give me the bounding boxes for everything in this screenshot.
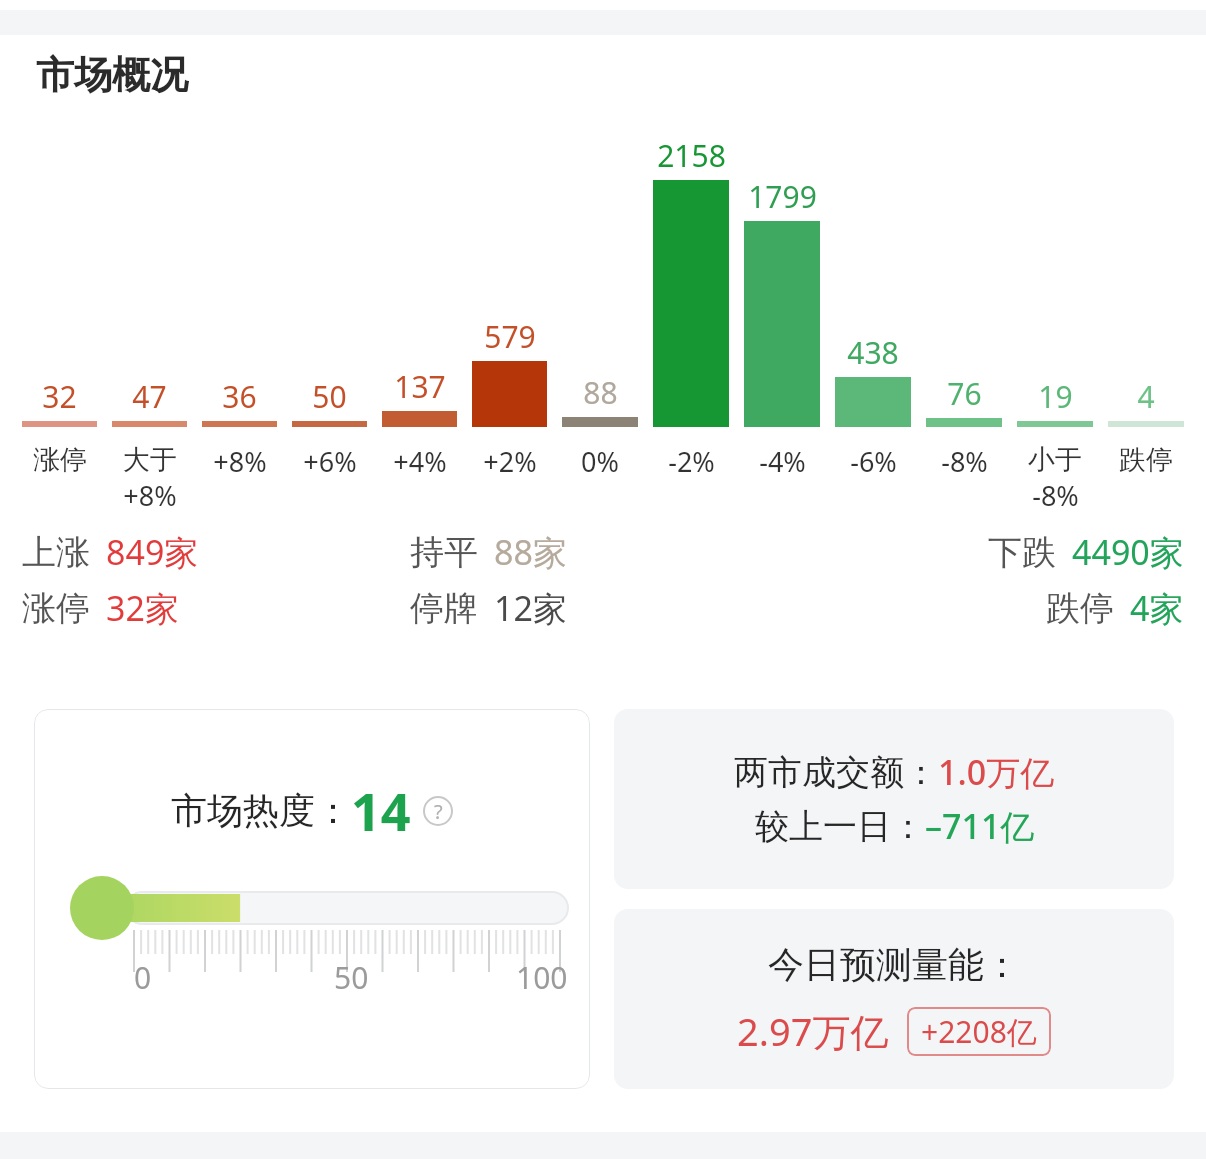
staticText: 市场概况: [36, 51, 188, 99]
staticText: 上涨: [22, 531, 90, 574]
staticText: 1799: [748, 176, 817, 217]
button[interactable]: 438: [835, 115, 911, 515]
staticText: 2.97万亿: [737, 1005, 889, 1057]
button[interactable]: 持平: [410, 529, 797, 575]
staticText: 市场热度：: [171, 788, 351, 833]
staticText: 较上一日：: [755, 805, 925, 848]
staticText: ?: [434, 798, 443, 825]
button[interactable]: 涨停: [22, 585, 410, 631]
button[interactable]: 下跌: [797, 529, 1184, 575]
staticText: 大于: [123, 443, 177, 477]
button[interactable]: 1799: [744, 115, 820, 515]
button[interactable]: 32: [22, 115, 97, 515]
button[interactable]: 跌停: [797, 585, 1184, 631]
staticText: 32: [42, 376, 77, 417]
staticText: -8%: [1032, 477, 1079, 514]
staticText: –711亿: [925, 803, 1035, 849]
staticText: 19: [1038, 376, 1073, 417]
staticText: 88: [583, 372, 618, 413]
staticText: +2%: [483, 443, 537, 480]
staticText: 100: [516, 957, 568, 998]
staticText: 47: [132, 376, 167, 417]
staticText: +8%: [213, 443, 267, 480]
staticText: 849家: [106, 529, 199, 575]
staticText: -8%: [941, 443, 988, 480]
staticText: 1.0万亿: [938, 749, 1055, 795]
button[interactable]: 上涨: [22, 529, 410, 575]
staticText: 跌停: [1046, 587, 1114, 630]
staticText: 跌停: [1119, 443, 1173, 477]
staticText: 32家: [106, 585, 179, 631]
staticText: 579: [484, 316, 536, 357]
button[interactable]: 50: [292, 115, 367, 515]
staticText: 0%: [581, 443, 619, 480]
staticText: 小于: [1028, 443, 1082, 477]
staticText: 停牌: [410, 587, 478, 630]
staticText: +4%: [393, 443, 447, 480]
staticText: +8%: [123, 477, 177, 514]
button[interactable]: 帮助说明: [423, 796, 453, 826]
staticText: 涨停: [22, 587, 90, 630]
button[interactable]: 2158: [653, 115, 729, 515]
button[interactable]: 88: [562, 115, 638, 515]
staticText: 50: [312, 376, 347, 417]
staticText: -2%: [668, 443, 715, 480]
staticText: 12家: [494, 585, 567, 631]
staticText: 36: [222, 376, 257, 417]
staticText: 下跌: [988, 531, 1056, 574]
button[interactable]: 市场热度：: [34, 709, 590, 1089]
staticText: 76: [947, 373, 982, 414]
staticText: 2158: [657, 135, 726, 176]
staticText: 4490家: [1072, 529, 1184, 575]
button[interactable]: 36: [202, 115, 277, 515]
button[interactable]: 今日预测量能：: [614, 909, 1174, 1089]
staticText: +2208亿: [921, 1011, 1037, 1052]
button[interactable]: 19: [1017, 115, 1093, 515]
staticText: 4: [1137, 376, 1155, 417]
staticText: -6%: [850, 443, 897, 480]
staticText: 涨停: [33, 443, 87, 477]
staticText: +6%: [303, 443, 357, 480]
staticText: 4家: [1130, 585, 1184, 631]
staticText: 今日预测量能：: [768, 942, 1020, 987]
button[interactable]: 两市成交额：: [614, 709, 1174, 889]
button[interactable]: 76: [926, 115, 1002, 515]
button[interactable]: 137: [382, 115, 457, 515]
staticText: 50: [334, 957, 369, 998]
staticText: 88家: [494, 529, 567, 575]
button[interactable]: 停牌: [410, 585, 797, 631]
button[interactable]: 579: [472, 115, 547, 515]
button[interactable]: 4: [1108, 115, 1184, 515]
staticText: 14: [351, 775, 411, 846]
staticText: -4%: [759, 443, 806, 480]
staticText: 137: [394, 366, 446, 407]
button[interactable]: 47: [112, 115, 187, 515]
staticText: 两市成交额：: [734, 751, 938, 794]
staticText: 持平: [410, 531, 478, 574]
staticText: 0: [134, 957, 152, 998]
staticText: 438: [847, 332, 899, 373]
